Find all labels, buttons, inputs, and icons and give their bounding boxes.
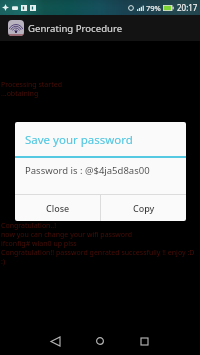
button[interactable]: Close bbox=[15, 195, 100, 221]
staticText: Copy bbox=[133, 202, 155, 214]
button[interactable]: Recents bbox=[132, 329, 156, 353]
staticText: Processing started ...obtaining bbox=[1, 80, 62, 98]
staticText: Close bbox=[46, 202, 70, 214]
staticText: 79% bbox=[146, 3, 161, 13]
staticText: Genrating Procedure bbox=[28, 22, 123, 35]
staticText: Save your password bbox=[25, 132, 133, 148]
button[interactable]: Genrating Procedure bbox=[0, 15, 200, 41]
staticText: Congratulation..! now you can change you… bbox=[1, 221, 195, 266]
button[interactable]: Copy bbox=[101, 195, 186, 221]
button[interactable]: Home bbox=[88, 329, 112, 353]
staticText: 20:17 bbox=[177, 2, 198, 13]
button[interactable]: Back bbox=[43, 329, 67, 353]
staticText: Password is : @$4ja5d8as00 bbox=[25, 164, 150, 177]
